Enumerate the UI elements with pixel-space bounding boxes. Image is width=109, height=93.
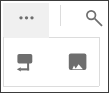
button[interactable]: Search bbox=[82, 6, 102, 26]
button[interactable]: More options bbox=[3, 3, 49, 38]
button[interactable]: Return bbox=[15, 52, 35, 74]
button[interactable]: Image bbox=[69, 53, 87, 70]
